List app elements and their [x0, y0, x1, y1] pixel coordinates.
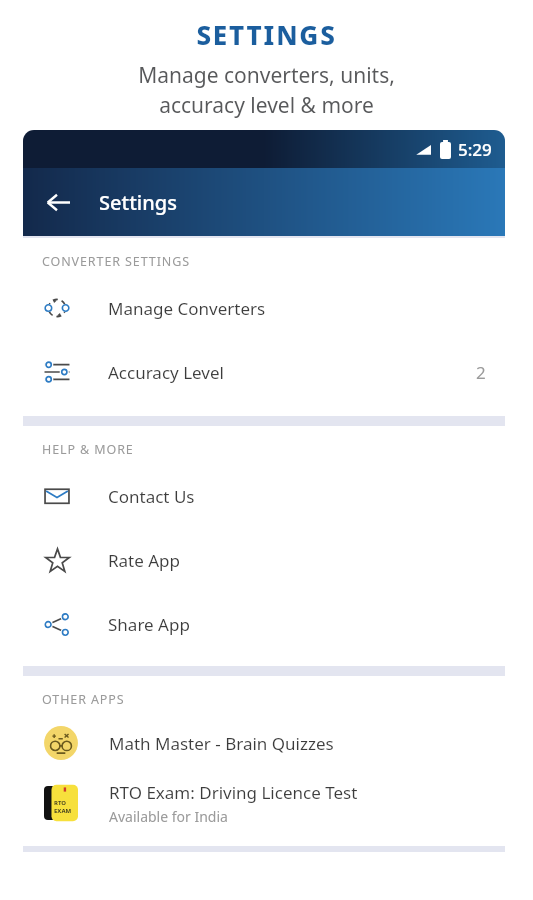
staticText: EXAM: [54, 807, 72, 815]
staticText: Accuracy Level: [108, 361, 224, 384]
staticText: CONVERTER SETTINGS: [42, 253, 190, 270]
staticText: RTO: [54, 799, 67, 807]
button[interactable]: Share App: [23, 592, 505, 656]
button[interactable]: Manage Converters: [23, 276, 505, 340]
button[interactable]: Back: [35, 179, 81, 225]
button[interactable]: RTO: [23, 772, 505, 834]
button[interactable]: Math Master - Brain Quizzes: [23, 714, 505, 772]
staticText: Available for India: [109, 807, 228, 826]
staticText: HELP & MORE: [42, 441, 134, 458]
staticText: 5:29: [458, 138, 492, 161]
staticText: Rate App: [108, 549, 181, 572]
staticText: SETTINGS: [0, 17, 533, 52]
staticText: RTO Exam: Driving Licence Test: [109, 781, 358, 804]
button[interactable]: Rate App: [23, 528, 505, 592]
staticText: Manage converters, units, accuracy level…: [0, 61, 533, 119]
staticText: Manage Converters: [108, 297, 266, 320]
staticText: OTHER APPS: [42, 691, 125, 708]
button[interactable]: Accuracy Level: [23, 340, 505, 404]
staticText: Settings: [99, 189, 177, 216]
staticText: Math Master - Brain Quizzes: [109, 732, 334, 755]
button[interactable]: Contact Us: [23, 464, 505, 528]
staticText: Share App: [108, 613, 190, 636]
staticText: 2: [476, 361, 486, 384]
staticText: Contact Us: [108, 485, 195, 508]
